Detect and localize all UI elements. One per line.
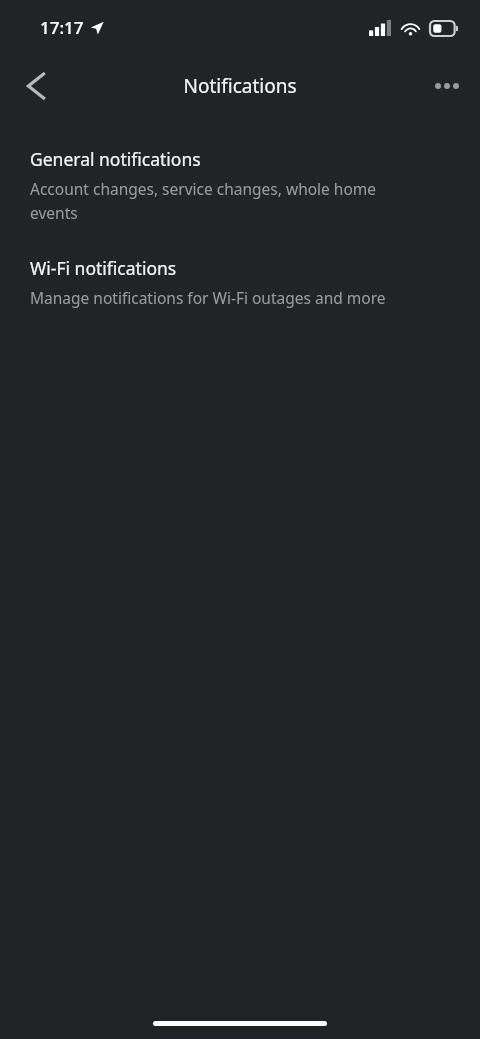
button[interactable]: General notifications <box>0 145 480 225</box>
staticText: General notifications <box>30 147 201 171</box>
staticText: Manage notifications for Wi-Fi outages a… <box>30 287 386 308</box>
staticText: Account changes, service changes, whole … <box>30 178 420 223</box>
staticText: Wi-Fi notifications <box>30 256 177 280</box>
staticText: 17:17 <box>40 16 84 39</box>
staticText: Notifications <box>183 73 297 99</box>
button[interactable]: Wi-Fi notifications <box>0 254 480 310</box>
button[interactable]: More options <box>423 62 471 110</box>
button[interactable]: Back <box>12 62 60 110</box>
